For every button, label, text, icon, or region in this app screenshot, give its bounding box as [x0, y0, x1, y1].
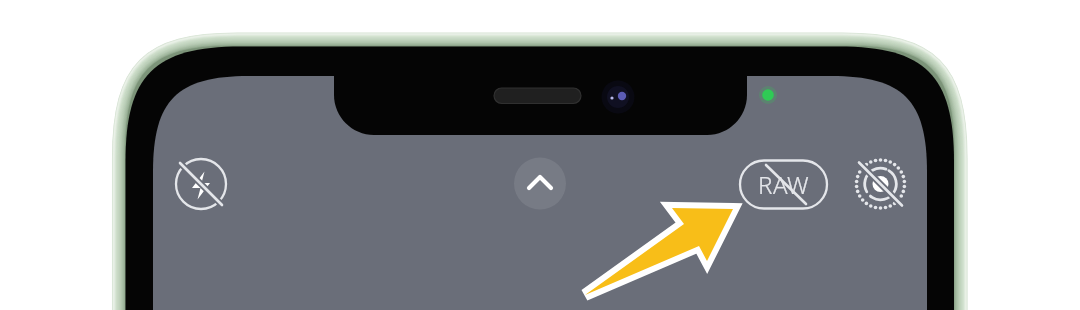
button[interactable]: Live Photo off — [852, 155, 908, 211]
button[interactable]: Flash off — [172, 155, 228, 211]
staticText: RAW — [758, 168, 810, 201]
button[interactable]: RAW off — [740, 160, 827, 208]
button[interactable]: Show more camera controls — [514, 157, 567, 210]
